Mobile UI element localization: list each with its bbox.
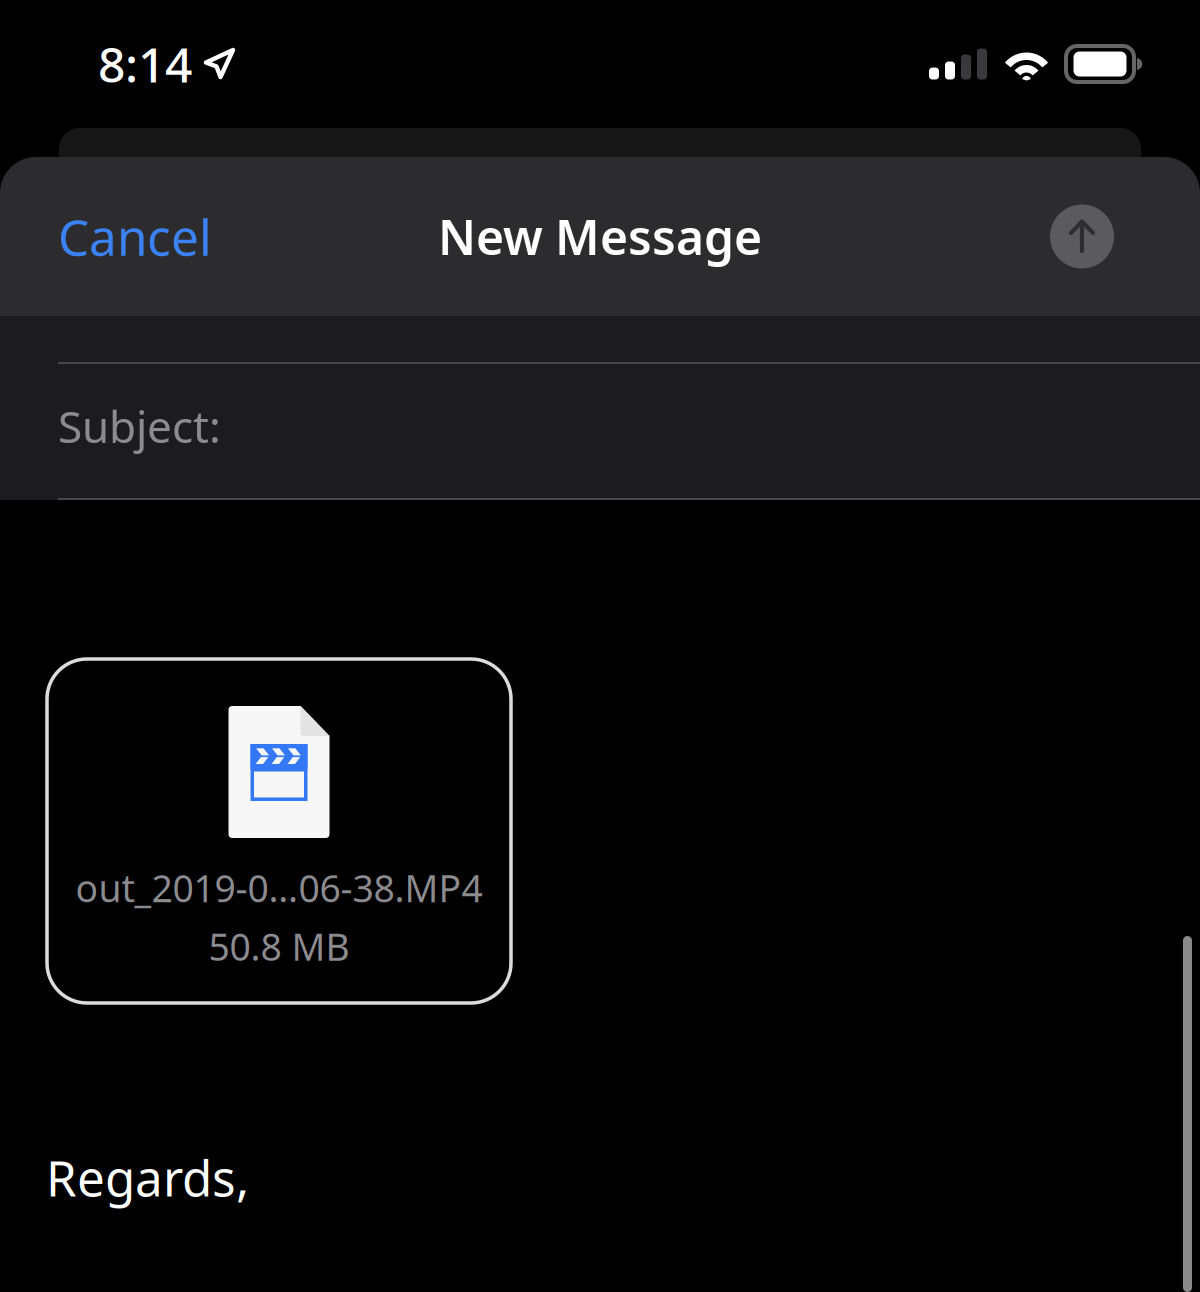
staticText: Subject: — [58, 397, 221, 455]
button[interactable]: Send — [1050, 204, 1114, 268]
button[interactable]: out_2019-0…06-38.MP4 — [47, 659, 511, 1003]
staticText: New Message — [438, 205, 762, 268]
staticText: Cancel — [58, 204, 212, 269]
staticText: Regards, — [46, 1144, 249, 1210]
button[interactable]: Cancel — [58, 188, 212, 285]
button[interactable]: Regards, — [0, 1144, 1200, 1210]
button[interactable]: Subject: — [0, 364, 1200, 498]
staticText: 50.8 MB — [208, 922, 349, 971]
staticText: 8:14 — [98, 32, 192, 96]
staticText: out_2019-0…06-38.MP4 — [75, 863, 482, 913]
